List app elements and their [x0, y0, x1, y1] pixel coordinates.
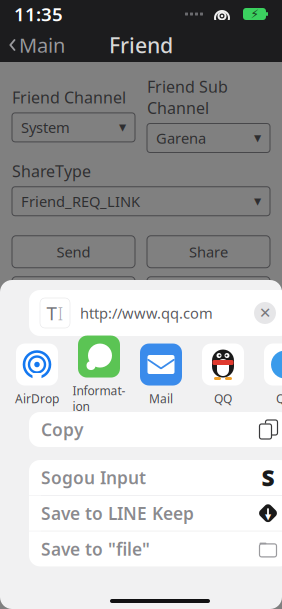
staticText: ▼	[119, 122, 126, 133]
staticText: Friend	[109, 31, 173, 59]
staticText: ⚡︎	[250, 7, 258, 21]
staticText: AirDrop	[15, 390, 59, 406]
staticText: System	[21, 118, 70, 137]
button[interactable]: Copy	[29, 412, 282, 447]
button[interactable]: QQ	[258, 343, 282, 406]
staticText: T	[46, 301, 56, 325]
staticText: S	[261, 462, 274, 492]
button[interactable]: Share	[147, 236, 270, 268]
staticText: AddFriend	[173, 283, 244, 302]
button[interactable]: Save to "file"	[29, 531, 282, 566]
button[interactable]: Close	[250, 298, 280, 328]
staticText: Friend_REQ_LINK	[21, 191, 140, 211]
staticText: ShareType	[12, 160, 91, 182]
button[interactable]: Garena	[147, 123, 270, 152]
button[interactable]: Mail	[134, 343, 188, 406]
staticText: ▼	[265, 512, 271, 521]
button[interactable]: Save to LINE Keep	[29, 496, 282, 531]
staticText: Mail	[149, 390, 173, 406]
staticText: ✕	[259, 305, 271, 321]
staticText: http://www.qq.com	[80, 303, 213, 323]
staticText: Save to LINE Keep	[41, 502, 194, 525]
staticText: Sogou Input	[41, 466, 146, 489]
button[interactable]: AddFriend	[147, 277, 270, 309]
staticText: Share	[189, 242, 228, 261]
staticText: Friend Channel	[12, 87, 126, 108]
button[interactable]: Send	[12, 236, 135, 268]
staticText: Copy	[41, 418, 83, 441]
staticText: ▼	[254, 133, 261, 143]
staticText: Information	[72, 383, 125, 414]
staticText: Garena	[156, 128, 206, 148]
staticText: Main	[19, 32, 65, 58]
staticText: Friend Sub Channel	[147, 76, 228, 118]
button[interactable]: AirDrop	[10, 343, 64, 406]
button[interactable]: Information	[72, 336, 126, 414]
staticText: Save to "file"	[41, 537, 150, 560]
staticText: I	[57, 301, 63, 325]
button[interactable]: System	[12, 113, 135, 142]
button[interactable]: Sogou Input	[29, 460, 282, 495]
staticText: ▼	[254, 196, 261, 206]
button[interactable]: Main	[0, 26, 73, 64]
staticText: QueryFriend	[31, 283, 116, 302]
button[interactable]: QQ	[196, 343, 250, 406]
button[interactable]: QueryFriend	[12, 277, 135, 309]
staticText: 11:35	[14, 2, 63, 26]
staticText: QQ	[276, 390, 282, 406]
staticText: Send	[56, 242, 90, 261]
button[interactable]: Friend_REQ_LINK	[12, 187, 270, 216]
staticText: QQ	[214, 390, 232, 406]
